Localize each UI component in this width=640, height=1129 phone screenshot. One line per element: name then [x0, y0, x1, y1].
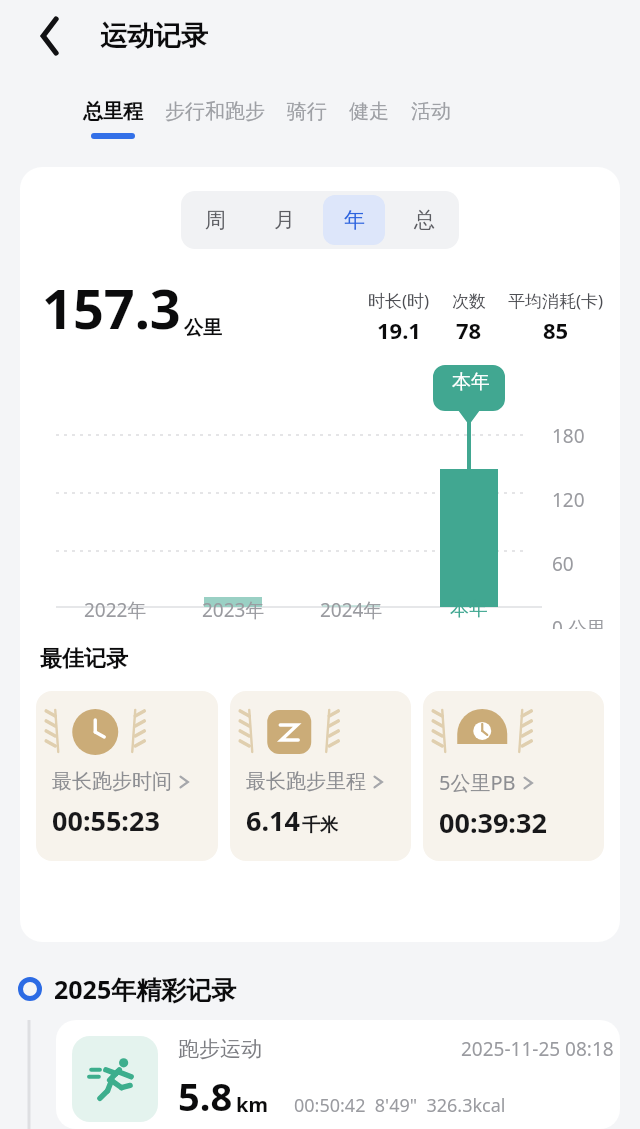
staticText: 公里	[184, 316, 222, 340]
staticText: 运动记录	[100, 19, 208, 53]
button[interactable]: 骑行	[276, 72, 338, 133]
staticText: 总	[414, 207, 435, 233]
staticText: 2022年	[84, 597, 147, 623]
staticText: 2024年	[320, 597, 383, 623]
staticText: 60	[552, 551, 574, 577]
staticText: 月	[274, 207, 295, 233]
staticText: 周	[205, 207, 226, 233]
staticText: 85	[543, 315, 569, 345]
button[interactable]: 最长跑步时间	[36, 691, 218, 861]
button[interactable]: 总里程	[72, 72, 154, 139]
staticText: 5公里PB	[439, 769, 516, 796]
staticText: 78	[456, 315, 482, 345]
staticText: 年	[344, 207, 365, 233]
button[interactable]: 跑步运动	[56, 1020, 620, 1129]
staticText: 平均消耗(卡)	[508, 289, 604, 312]
staticText: 180	[552, 423, 585, 449]
staticText: 本年	[450, 597, 488, 621]
staticText: 19.1	[377, 315, 421, 345]
staticText: 健走	[349, 99, 389, 124]
button[interactable]: 健走	[338, 72, 400, 133]
button[interactable]: 最长跑步里程	[230, 691, 411, 861]
button[interactable]: 周	[185, 195, 246, 245]
staticText: 跑步运动	[178, 1036, 262, 1062]
staticText: 157.3	[42, 271, 181, 345]
button[interactable]: 年	[323, 195, 385, 245]
staticText: 本年	[452, 370, 490, 394]
staticText: 骑行	[287, 99, 327, 124]
staticText: 步行和跑步	[165, 99, 265, 124]
staticText: 120	[552, 487, 585, 513]
staticText: 时长(时)	[368, 289, 430, 312]
staticText: 00:50:42 8'49" 326.3kcal	[294, 1093, 506, 1118]
staticText: 次数	[452, 291, 486, 312]
staticText: 千米	[302, 814, 338, 837]
staticText: 2025年精彩记录	[54, 972, 237, 1006]
button[interactable]: Back	[28, 14, 72, 58]
staticText: 最长跑步时间	[52, 769, 172, 794]
button[interactable]: 5公里PB	[423, 691, 604, 861]
staticText: km	[236, 1091, 268, 1118]
button[interactable]: 活动	[400, 72, 462, 133]
button[interactable]: 总	[393, 195, 455, 245]
staticText: 2023年	[202, 597, 265, 623]
staticText: 00:39:32	[439, 804, 547, 841]
button[interactable]: 步行和跑步	[154, 72, 276, 133]
staticText: 最长跑步里程	[246, 769, 366, 794]
staticText: 6.14	[246, 802, 300, 839]
staticText: 活动	[411, 99, 451, 124]
staticText: 0 公里	[552, 615, 606, 629]
staticText: 总里程	[83, 99, 143, 124]
staticText: 00:55:23	[52, 802, 160, 839]
staticText: 5.8	[178, 1070, 233, 1122]
button[interactable]: 月	[254, 195, 315, 245]
staticText: 最佳记录	[40, 645, 128, 673]
staticText: 2025-11-25 08:18	[461, 1036, 614, 1062]
